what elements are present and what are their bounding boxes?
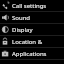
staticText: Sound (12, 14, 31, 22)
button[interactable]: Applications (0, 48, 64, 59)
button[interactable]: Display (0, 24, 64, 35)
button[interactable]: Sound (0, 12, 64, 23)
button[interactable]: Location & security (0, 36, 64, 47)
staticText: Location & security (12, 38, 62, 46)
staticText: Applications (12, 50, 47, 58)
staticText: Display (12, 26, 33, 34)
staticText: Call settings (12, 2, 47, 10)
button[interactable]: Call settings (0, 0, 64, 11)
